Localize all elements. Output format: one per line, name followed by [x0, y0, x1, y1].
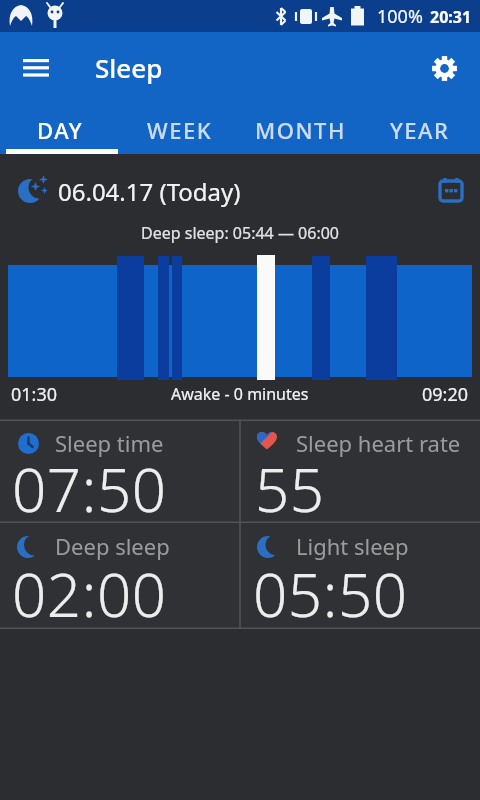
- staticText: 07:50: [12, 448, 167, 530]
- staticText: Light sleep: [296, 531, 409, 561]
- button[interactable]: WEEK: [120, 105, 240, 154]
- staticText: YEAR: [390, 115, 450, 145]
- staticText: MONTH: [255, 115, 346, 145]
- staticText: DAY: [37, 115, 84, 145]
- staticText: Awake - 0 minutes: [171, 383, 309, 405]
- button[interactable]: Sleep time: [0, 421, 239, 522]
- button[interactable]: DAY: [0, 105, 120, 154]
- button[interactable]: [428, 168, 474, 212]
- staticText: Sleep time: [55, 428, 164, 458]
- staticText: 06.04.17 (Today): [58, 175, 241, 208]
- staticText: 05:50: [253, 553, 408, 635]
- staticText: Deep sleep: 05:44 — 06:00: [141, 222, 339, 244]
- button[interactable]: Light sleep: [241, 524, 480, 628]
- staticText: 55: [255, 448, 325, 530]
- button[interactable]: [420, 44, 468, 92]
- button[interactable]: MONTH: [240, 105, 360, 154]
- staticText: Sleep: [95, 50, 163, 85]
- button[interactable]: 06.04.17 (Today): [0, 160, 480, 212]
- staticText: WEEK: [147, 115, 213, 145]
- staticText: 09:20: [422, 382, 469, 407]
- button[interactable]: YEAR: [360, 105, 480, 154]
- button[interactable]: Sleep heart rate: [241, 421, 480, 522]
- button[interactable]: [12, 44, 60, 92]
- button[interactable]: Deep sleep: [0, 524, 239, 628]
- staticText: 01:30: [11, 382, 58, 407]
- staticText: Deep sleep: [55, 531, 170, 561]
- staticText: 02:00: [12, 553, 167, 635]
- staticText: 100%: [377, 4, 423, 29]
- staticText: 20:31: [430, 6, 472, 28]
- staticText: Sleep heart rate: [296, 428, 461, 458]
